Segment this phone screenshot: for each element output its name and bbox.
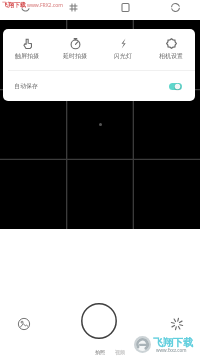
button[interactable]: 闪光灯 [101, 29, 145, 70]
button[interactable]: 相机设置 [149, 29, 193, 70]
staticText: 相机设置 [159, 52, 183, 60]
button[interactable]: 视频 [111, 345, 129, 359]
staticText: 延时拍摄 [63, 52, 87, 60]
staticText: 自动保存 [14, 82, 38, 90]
button[interactable]: 拍照 [78, 300, 120, 342]
button[interactable]: 延时拍摄 [53, 29, 97, 70]
staticText: www.FRX2.com [27, 2, 63, 9]
staticText: www.fxxz.com [156, 347, 187, 353]
staticText: 闪光灯 [114, 52, 132, 60]
staticText: 触屏拍摄 [15, 52, 39, 60]
button[interactable]: 美颜 [15, 0, 35, 15]
button[interactable]: 切换摄像头 [165, 0, 185, 15]
staticText: 拍照 [95, 349, 105, 355]
staticText: 视频 [115, 349, 125, 355]
button[interactable]: 网格线 [63, 0, 83, 15]
button[interactable]: 触屏拍摄 [5, 29, 49, 70]
button[interactable]: 相册 [13, 313, 34, 334]
staticText: 飞翔下载 [153, 336, 193, 349]
button[interactable]: 自动保存 [3, 71, 195, 101]
button[interactable]: 画面比例 [115, 0, 135, 15]
button[interactable]: 拍照 [91, 345, 109, 359]
button[interactable]: 切换摄像头 [166, 313, 187, 334]
staticText: 飞翔下载 [2, 1, 26, 9]
